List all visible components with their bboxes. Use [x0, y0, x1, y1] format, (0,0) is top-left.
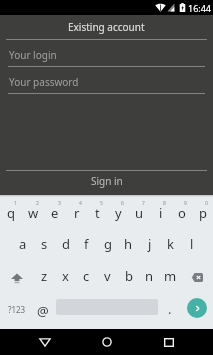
button[interactable]: Enter — [176, 294, 213, 329]
button[interactable]: 3 — [44, 195, 66, 228]
staticText: n — [145, 267, 154, 285]
button[interactable]: f — [76, 228, 97, 261]
staticText: l — [190, 235, 194, 253]
staticText: Your password — [9, 75, 79, 89]
button[interactable]: Shift — [0, 261, 33, 294]
staticText: 9 — [184, 200, 187, 207]
button[interactable]: Back — [16, 329, 74, 355]
button[interactable]: 5 — [87, 195, 108, 228]
staticText: ?123 — [8, 304, 26, 315]
button[interactable]: 2 — [22, 195, 44, 228]
button[interactable]: 6 — [108, 195, 129, 228]
staticText: a — [19, 235, 27, 253]
staticText: . — [168, 300, 172, 318]
staticText: i — [159, 204, 163, 222]
button[interactable]: m — [160, 261, 181, 294]
staticText: h — [124, 235, 133, 253]
staticText: @ — [37, 302, 49, 320]
staticText: j — [148, 235, 152, 253]
button[interactable]: v — [97, 261, 118, 294]
button[interactable]: Delete — [181, 261, 213, 294]
button[interactable]: n — [139, 261, 160, 294]
staticText: 2 — [36, 200, 39, 207]
staticText: s — [41, 235, 48, 253]
button[interactable]: 8 — [150, 195, 171, 228]
staticText: 1 — [14, 200, 17, 207]
staticText: r — [74, 204, 80, 222]
staticText: z — [41, 267, 48, 285]
button[interactable]: Recents — [140, 329, 198, 355]
button[interactable]: Existing account — [0, 15, 213, 39]
button[interactable]: 0 — [192, 195, 213, 228]
button[interactable]: 4 — [66, 195, 87, 228]
staticText: 16:44 — [188, 2, 212, 14]
button[interactable]: . — [163, 294, 176, 329]
button[interactable]: s — [34, 228, 55, 261]
button[interactable] — [51, 294, 163, 329]
button[interactable]: 1 — [0, 195, 22, 228]
staticText: m — [164, 267, 177, 285]
staticText: 3 — [58, 200, 61, 207]
staticText: c — [83, 267, 90, 285]
staticText: 4 — [79, 200, 82, 207]
staticText: x — [62, 267, 69, 285]
button[interactable]: c — [76, 261, 97, 294]
button[interactable]: 7 — [129, 195, 150, 228]
staticText: 7 — [142, 200, 145, 207]
button[interactable]: k — [160, 228, 181, 261]
staticText: 8 — [163, 200, 166, 207]
staticText: e — [51, 204, 59, 222]
button[interactable]: Home — [77, 329, 136, 355]
button[interactable]: g — [97, 228, 118, 261]
button[interactable]: l — [181, 228, 202, 261]
staticText: k — [167, 235, 174, 253]
staticText: 5 — [100, 200, 103, 207]
button[interactable]: z — [33, 261, 55, 294]
staticText: b — [125, 267, 133, 285]
staticText: w — [28, 204, 39, 222]
button[interactable]: 9 — [171, 195, 192, 228]
button[interactable]: Sign in — [0, 169, 213, 193]
button[interactable]: h — [118, 228, 139, 261]
button[interactable]: x — [55, 261, 76, 294]
button[interactable]: d — [55, 228, 76, 261]
staticText: Sign in — [91, 174, 123, 188]
staticText: t — [95, 204, 100, 222]
staticText: v — [104, 267, 111, 285]
staticText: 0 — [205, 200, 208, 207]
staticText: f — [84, 235, 89, 253]
button[interactable]: j — [139, 228, 160, 261]
staticText: y — [115, 204, 122, 222]
button[interactable]: a — [12, 228, 34, 261]
staticText: Your login — [9, 48, 57, 62]
button[interactable]: b — [118, 261, 139, 294]
button[interactable]: ?123 — [0, 294, 34, 329]
button[interactable]: @ — [34, 294, 51, 329]
staticText: g — [104, 235, 112, 253]
staticText: d — [62, 235, 70, 253]
staticText: u — [135, 204, 144, 222]
staticText: p — [199, 204, 207, 222]
staticText: Existing account — [68, 20, 145, 34]
staticText: o — [178, 204, 186, 222]
staticText: q — [7, 204, 15, 222]
staticText: 6 — [121, 200, 124, 207]
